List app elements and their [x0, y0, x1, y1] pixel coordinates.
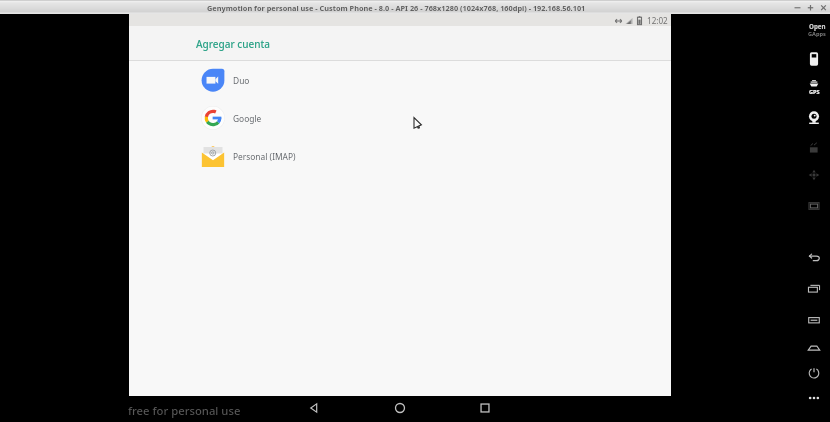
button[interactable]: Google [129, 99, 671, 137]
button[interactable]: Power [802, 361, 826, 385]
staticText: Duo [233, 75, 250, 86]
button[interactable]: More options [802, 386, 826, 410]
button[interactable]: Minimize [791, 1, 804, 14]
staticText: Agregar cuenta [196, 37, 271, 51]
button[interactable]: Camera [802, 106, 826, 130]
button[interactable]: Home [802, 336, 826, 360]
staticText: GApps [808, 30, 826, 38]
button[interactable]: Menu [802, 308, 826, 332]
staticText: Open [809, 22, 826, 30]
button[interactable]: Maximize [804, 1, 817, 14]
button[interactable]: Identifiers [802, 194, 826, 218]
button[interactable]: Back [305, 399, 323, 417]
button[interactable]: Recents [476, 399, 494, 417]
button[interactable]: GPS [802, 72, 826, 96]
button[interactable]: Duo [129, 61, 671, 99]
button[interactable]: Disk I/O [802, 136, 826, 160]
button[interactable]: Home [391, 399, 409, 417]
button[interactable]: Open GApps [805, 22, 829, 38]
button[interactable]: Battery [802, 47, 826, 71]
button[interactable]: Close [817, 1, 830, 14]
button[interactable]: Back [802, 246, 826, 270]
staticText: Google [233, 113, 262, 124]
staticText: GPS [809, 88, 820, 96]
button[interactable]: Move [802, 163, 826, 187]
button[interactable]: Recent apps [802, 276, 826, 300]
staticText: free for personal use [128, 403, 241, 418]
staticText: 12:02 [647, 15, 668, 26]
staticText: Genymotion for personal use - Custom Pho… [207, 3, 586, 13]
button[interactable]: Personal (IMAP) [129, 137, 671, 175]
staticText: Personal (IMAP) [233, 151, 296, 162]
